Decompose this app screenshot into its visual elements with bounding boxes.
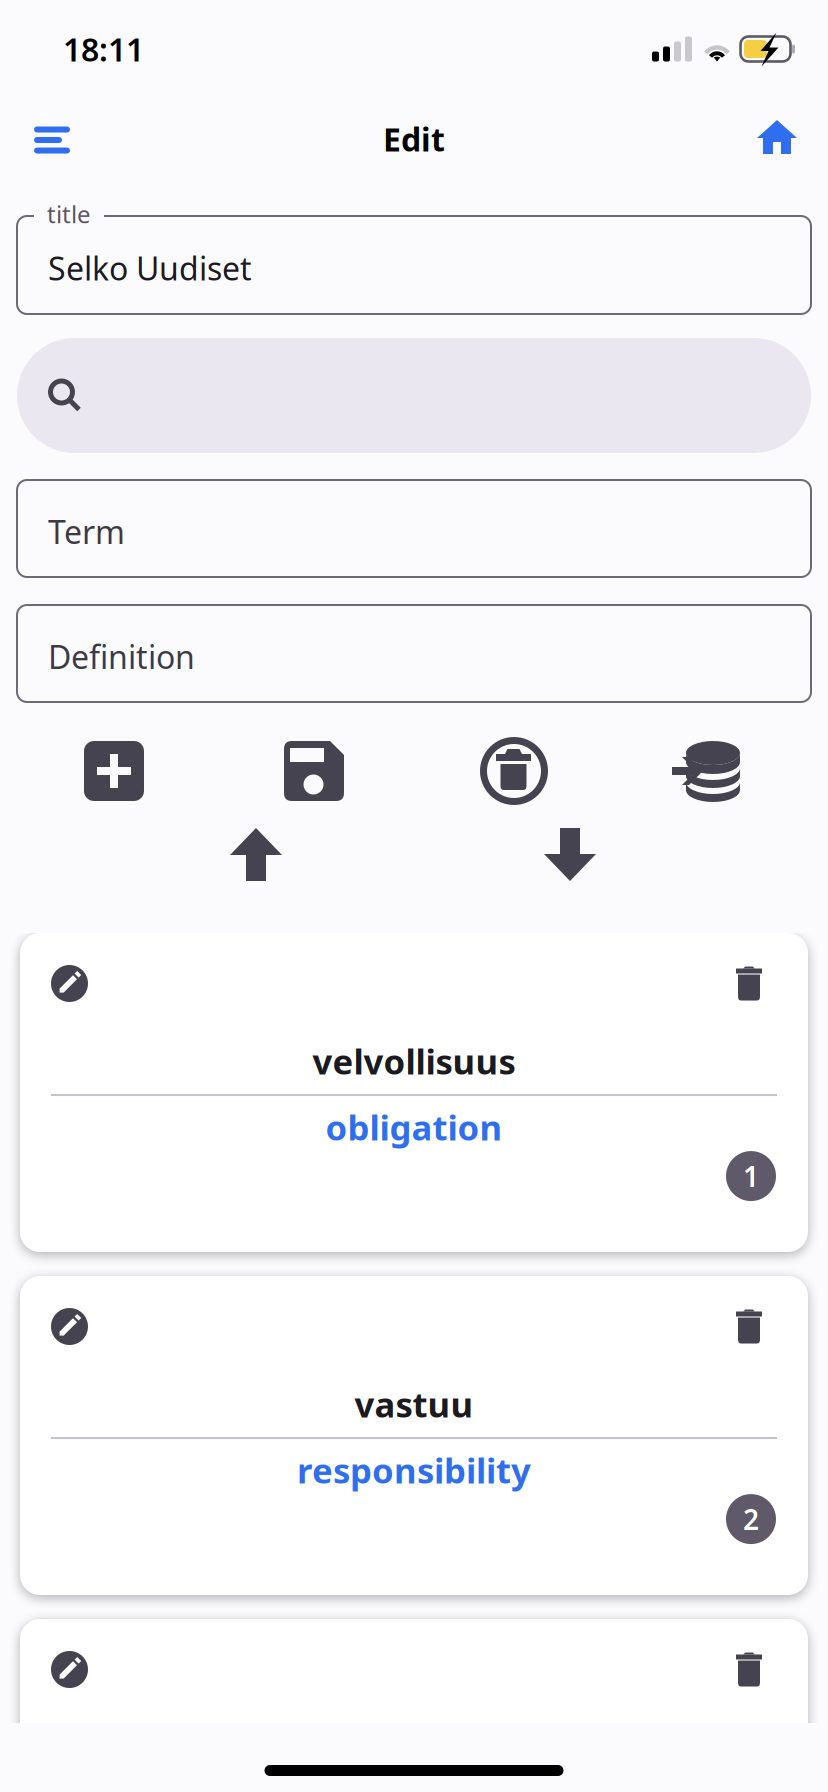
- button[interactable]: Save: [284, 741, 344, 801]
- staticText: 18:11: [63, 28, 144, 70]
- staticText: velvollisuus: [312, 1038, 515, 1084]
- staticText: responsibility: [297, 1447, 531, 1493]
- button[interactable]: Edit: [51, 965, 88, 1002]
- staticText: Edit: [383, 118, 445, 160]
- staticText: obligation: [325, 1104, 502, 1150]
- button[interactable]: Export: [544, 828, 596, 881]
- button[interactable]: Database: [672, 740, 740, 802]
- button[interactable]: Delete: [736, 966, 762, 1000]
- button[interactable]: Home: [733, 102, 828, 178]
- staticText: Selko Uudiset: [48, 247, 252, 289]
- button[interactable]: Add: [84, 741, 144, 801]
- staticText: 1: [743, 1157, 759, 1195]
- staticText: 2: [743, 1500, 759, 1538]
- staticText: Term: [48, 510, 125, 553]
- button[interactable]: Import: [230, 828, 282, 881]
- button[interactable]: Menu: [0, 101, 100, 178]
- staticText: kolmas: [351, 1724, 476, 1770]
- staticText: vastuu: [354, 1381, 473, 1427]
- button[interactable]: Edit: [51, 1651, 88, 1688]
- button[interactable]: Edit: [51, 1308, 88, 1345]
- button[interactable]: Delete: [736, 1309, 762, 1343]
- staticText: title: [47, 198, 91, 230]
- button[interactable]: Delete all: [480, 737, 548, 805]
- staticText: Definition: [48, 635, 195, 678]
- button[interactable]: Delete: [736, 1652, 762, 1686]
